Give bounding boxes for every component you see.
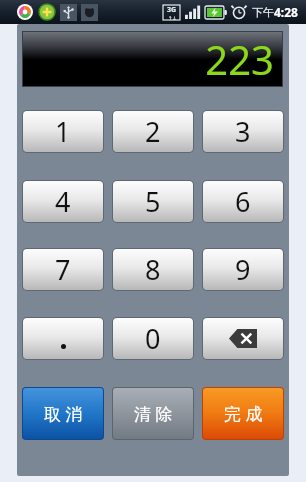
staticText: 3 [235,113,251,150]
staticText: 完 成 [224,402,263,425]
staticText: 5 [145,183,161,220]
button[interactable]: Backspace [203,318,283,359]
staticText: 下午 [252,5,274,19]
staticText: 清 除 [134,402,173,425]
staticText: 7 [55,251,71,288]
staticText: 223 [205,32,274,86]
staticText: 1 [55,113,71,150]
button[interactable]: 5 [113,181,193,222]
button[interactable]: 3 [203,111,283,152]
staticText: 2 [145,113,161,150]
staticText: 6 [235,183,251,220]
staticText: 4:28 [274,4,298,20]
button[interactable]: 1 [23,111,103,152]
button[interactable]: 清 除 [113,388,193,439]
button[interactable]: 9 [203,249,283,290]
button[interactable]: 7 [23,249,103,290]
staticText: ↑↓ [168,15,177,20]
staticText: 4 [55,183,71,220]
button[interactable]: 4 [23,181,103,222]
staticText: 0 [145,320,161,357]
button[interactable]: 0 [113,318,193,359]
button[interactable]: 8 [113,249,193,290]
button[interactable]: 6 [203,181,283,222]
button[interactable]: 完 成 [203,388,283,439]
staticText: 取 消 [44,402,83,425]
staticText: 8 [145,251,161,288]
button[interactable] [23,318,103,359]
button[interactable]: 取 消 [23,388,103,439]
staticText: 3G [167,5,177,15]
staticText: 9 [235,251,251,288]
button[interactable]: 2 [113,111,193,152]
